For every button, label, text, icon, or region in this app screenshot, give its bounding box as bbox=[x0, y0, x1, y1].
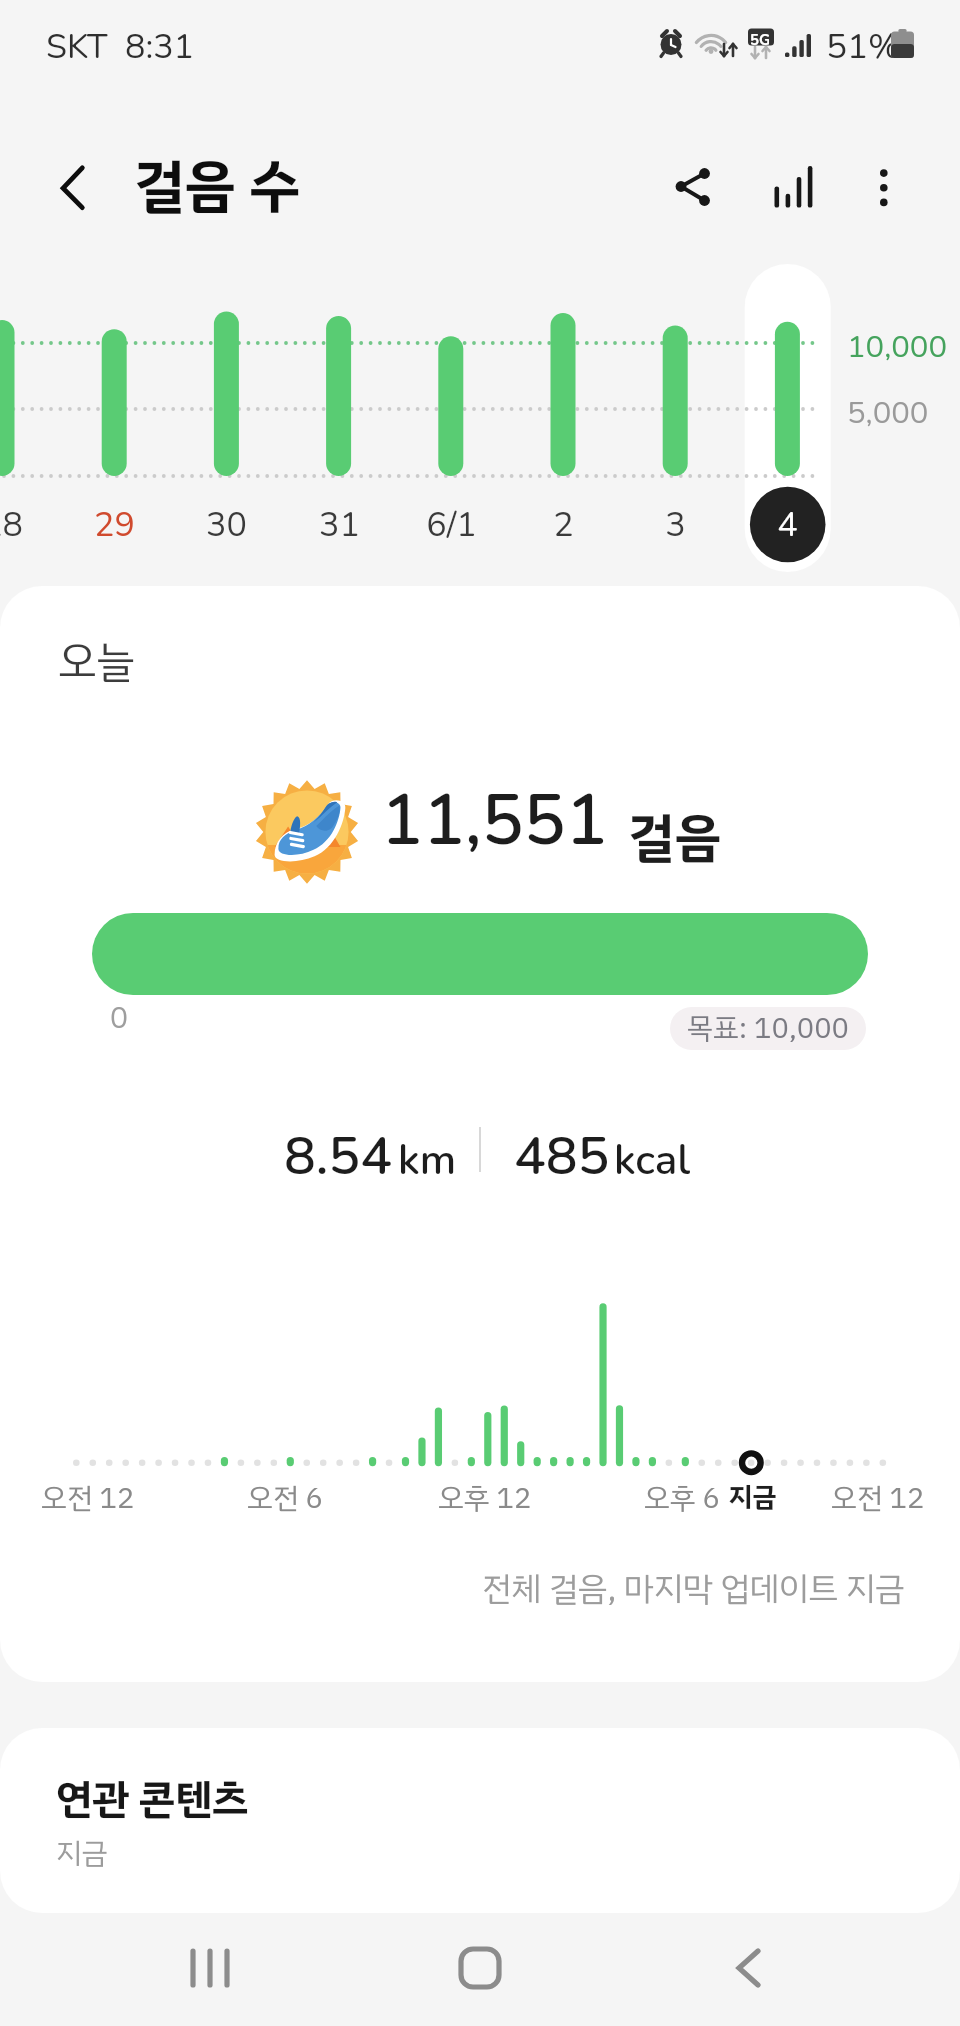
staticText: 28 bbox=[0, 502, 23, 548]
button[interactable]: Back bbox=[698, 1918, 798, 2018]
button[interactable]: 오늘 bbox=[0, 586, 960, 1682]
button[interactable]: More options bbox=[844, 145, 924, 225]
staticText: 6/1 bbox=[426, 502, 477, 548]
staticText: 걸음 bbox=[628, 799, 721, 877]
button[interactable]: Back bbox=[32, 147, 112, 227]
staticText: 오늘 bbox=[58, 629, 135, 694]
staticText: 지금 bbox=[728, 1477, 777, 1518]
staticText: 2 bbox=[553, 502, 574, 548]
staticText: 오후 6 bbox=[644, 1477, 720, 1521]
staticText: 오전 12 bbox=[41, 1477, 135, 1521]
staticText: 전체 걸음, 마지막 업데이트 지금 bbox=[482, 1564, 905, 1614]
staticText: 30 bbox=[206, 502, 247, 548]
staticText: 연관 콘텐츠 bbox=[56, 1769, 249, 1831]
staticText: 4 bbox=[777, 502, 798, 548]
staticText: 31 bbox=[319, 502, 360, 548]
staticText: SKT 8:31 bbox=[46, 24, 195, 70]
staticText: 5,000 bbox=[847, 392, 929, 434]
staticText: 3 bbox=[665, 502, 686, 548]
staticText: 오후 12 bbox=[438, 1477, 532, 1521]
staticText: 오전 6 bbox=[247, 1477, 323, 1521]
button[interactable]: Share bbox=[652, 145, 732, 225]
button[interactable]: Trends bbox=[752, 145, 832, 225]
staticText: 29 bbox=[94, 502, 135, 548]
staticText: kcal bbox=[614, 1132, 691, 1189]
staticText: 10,000 bbox=[847, 326, 948, 368]
staticText: 485 bbox=[514, 1120, 610, 1192]
button[interactable]: Recent apps bbox=[160, 1918, 260, 2018]
staticText: 걸음 수 bbox=[134, 143, 300, 229]
staticText: 8.54 bbox=[284, 1120, 392, 1192]
staticText: km bbox=[398, 1132, 457, 1189]
staticText: 오전 12 bbox=[831, 1477, 925, 1521]
button[interactable]: 연관 콘텐츠 bbox=[0, 1728, 960, 1913]
staticText: 0 bbox=[110, 998, 128, 1039]
staticText: 11,551 bbox=[381, 773, 608, 868]
staticText: 지금 bbox=[56, 1832, 108, 1876]
button[interactable]: Home bbox=[430, 1918, 530, 2018]
staticText: 51% bbox=[826, 23, 901, 71]
staticText: 목표: 10,000 bbox=[687, 1007, 849, 1050]
staticText: 5G bbox=[750, 30, 771, 50]
